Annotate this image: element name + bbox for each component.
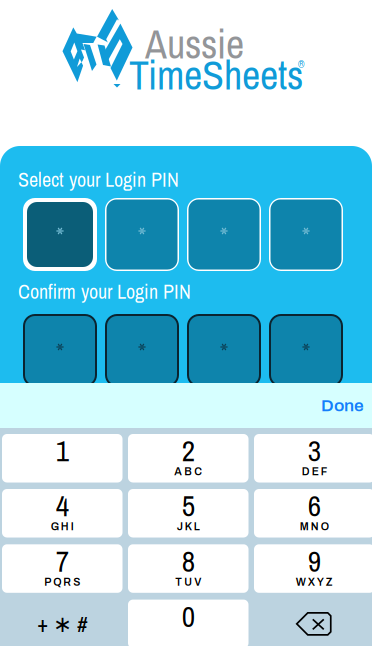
button[interactable]: 1 bbox=[2, 434, 122, 482]
staticText: J K L bbox=[177, 521, 200, 533]
button[interactable]: PIN digit bbox=[187, 198, 261, 271]
button[interactable]: 2 bbox=[128, 434, 248, 482]
button[interactable]: Done bbox=[321, 383, 372, 428]
button[interactable]: PIN digit bbox=[105, 314, 179, 387]
staticText: + ∗ # bbox=[37, 609, 87, 639]
staticText: 0 bbox=[182, 597, 195, 636]
staticText: Aussie bbox=[145, 17, 244, 71]
staticText: D E F bbox=[302, 466, 327, 478]
button[interactable]: 9 bbox=[254, 544, 372, 593]
staticText: 5 bbox=[182, 486, 195, 525]
button[interactable]: PIN digit bbox=[23, 314, 97, 387]
staticText: P Q R S bbox=[44, 576, 80, 588]
staticText: A B C bbox=[174, 466, 202, 478]
button[interactable]: 6 bbox=[254, 489, 372, 537]
staticText: 3 bbox=[308, 431, 321, 470]
button[interactable]: 7 bbox=[2, 544, 122, 593]
button[interactable]: 0 bbox=[128, 600, 248, 646]
button[interactable]: PIN digit bbox=[105, 198, 179, 271]
button[interactable]: PIN digit bbox=[23, 198, 97, 271]
staticText: 8 bbox=[182, 541, 195, 581]
button[interactable]: 8 bbox=[128, 544, 248, 593]
staticText: W X Y Z bbox=[296, 576, 333, 588]
staticText: Done bbox=[321, 396, 364, 415]
button[interactable]: PIN digit bbox=[269, 314, 343, 387]
button[interactable]: 4 bbox=[2, 489, 122, 537]
staticText: TimeSheets bbox=[129, 48, 303, 102]
button[interactable]: Symbols bbox=[2, 600, 122, 646]
staticText: 4 bbox=[56, 486, 69, 525]
staticText: 7 bbox=[56, 541, 69, 581]
button[interactable]: Delete bbox=[254, 600, 372, 646]
button[interactable]: PIN digit bbox=[269, 198, 343, 271]
staticText: ® bbox=[298, 57, 304, 71]
staticText: 1 bbox=[56, 431, 69, 470]
staticText: 6 bbox=[308, 486, 321, 525]
staticText: Select your Login PIN bbox=[18, 166, 179, 193]
staticText: T U V bbox=[175, 576, 201, 588]
staticText: 2 bbox=[182, 431, 195, 470]
staticText: M N O bbox=[300, 521, 329, 533]
button[interactable]: PIN digit bbox=[187, 314, 261, 387]
staticText: Confirm your Login PIN bbox=[18, 278, 191, 305]
button[interactable]: 3 bbox=[254, 434, 372, 482]
button[interactable]: 5 bbox=[128, 489, 248, 537]
staticText: 9 bbox=[308, 541, 321, 581]
staticText: G H I bbox=[51, 521, 74, 533]
